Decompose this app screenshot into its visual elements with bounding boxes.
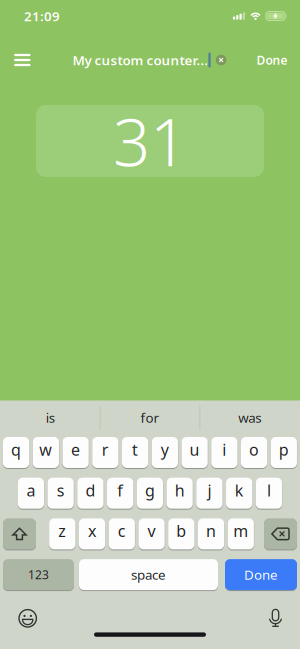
button[interactable]: a [18, 478, 44, 509]
staticText: q [11, 439, 21, 460]
staticText: r [102, 439, 109, 460]
staticText: My custom counter... [72, 51, 208, 69]
button[interactable]: j [196, 478, 222, 509]
button[interactable]: d [77, 478, 103, 509]
button[interactable]: w [33, 437, 59, 468]
staticText: l [267, 480, 271, 501]
button[interactable]: h [166, 478, 193, 509]
button[interactable]: was [200, 401, 299, 434]
button[interactable]: Emoji [13, 603, 43, 633]
button[interactable]: s [47, 478, 74, 509]
button[interactable]: i [211, 437, 237, 468]
button[interactable]: b [168, 518, 194, 549]
staticText: c [118, 520, 126, 541]
staticText: a [26, 480, 35, 501]
staticText: h [175, 480, 185, 501]
button[interactable]: p [271, 437, 297, 468]
staticText: v [147, 520, 155, 541]
staticText: Done [256, 52, 287, 68]
staticText: z [58, 520, 66, 541]
staticText: d [85, 480, 95, 501]
button[interactable]: u [181, 437, 208, 468]
staticText: for [140, 409, 159, 426]
staticText: is [46, 409, 55, 426]
staticText: g [145, 480, 155, 501]
button[interactable]: t [122, 437, 148, 468]
staticText: y [161, 439, 169, 460]
staticText: f [117, 480, 123, 501]
staticText: 31 [113, 98, 187, 184]
button[interactable]: Done [225, 559, 297, 590]
staticText: w [39, 439, 52, 460]
staticText: x [88, 520, 96, 541]
staticText: n [206, 520, 216, 541]
button[interactable]: Delete [264, 518, 297, 549]
button[interactable]: Menu [6, 44, 38, 76]
staticText: j [207, 480, 211, 501]
button[interactable]: for [100, 401, 199, 434]
button[interactable]: Shift [3, 518, 36, 549]
button[interactable]: r [92, 437, 118, 468]
button[interactable]: k [226, 478, 252, 509]
staticText: t [132, 439, 138, 460]
button[interactable]: n [198, 518, 224, 549]
staticText: 21:09 [24, 7, 60, 25]
button[interactable]: Done [250, 44, 293, 76]
staticText: i [222, 439, 226, 460]
staticText: 123 [28, 567, 49, 582]
staticText: k [235, 480, 244, 501]
button[interactable]: is [1, 401, 100, 434]
button[interactable]: f [107, 478, 133, 509]
button[interactable]: o [241, 437, 267, 468]
staticText: was [238, 409, 261, 426]
button[interactable]: space [79, 559, 218, 590]
staticText: o [249, 439, 259, 460]
button[interactable]: Clear text [216, 54, 227, 65]
button[interactable]: y [152, 437, 178, 468]
staticText: s [57, 480, 65, 501]
button[interactable]: z [49, 518, 75, 549]
button[interactable]: g [137, 478, 163, 509]
staticText: Done [244, 566, 278, 583]
staticText: e [71, 439, 80, 460]
staticText: m [233, 520, 248, 541]
button[interactable]: x [79, 518, 105, 549]
staticText: u [190, 439, 200, 460]
button[interactable]: 123 [3, 559, 74, 590]
staticText: p [279, 439, 289, 460]
button[interactable]: 31 [36, 105, 264, 177]
button[interactable]: m [228, 518, 254, 549]
button[interactable]: l [256, 478, 282, 509]
staticText: b [176, 520, 186, 541]
button[interactable]: Home [94, 632, 206, 637]
button[interactable]: v [138, 518, 165, 549]
button[interactable]: e [62, 437, 89, 468]
staticText: space [131, 566, 166, 583]
button[interactable]: q [3, 437, 29, 468]
button[interactable]: c [109, 518, 135, 549]
button[interactable]: Dictation [260, 603, 290, 633]
